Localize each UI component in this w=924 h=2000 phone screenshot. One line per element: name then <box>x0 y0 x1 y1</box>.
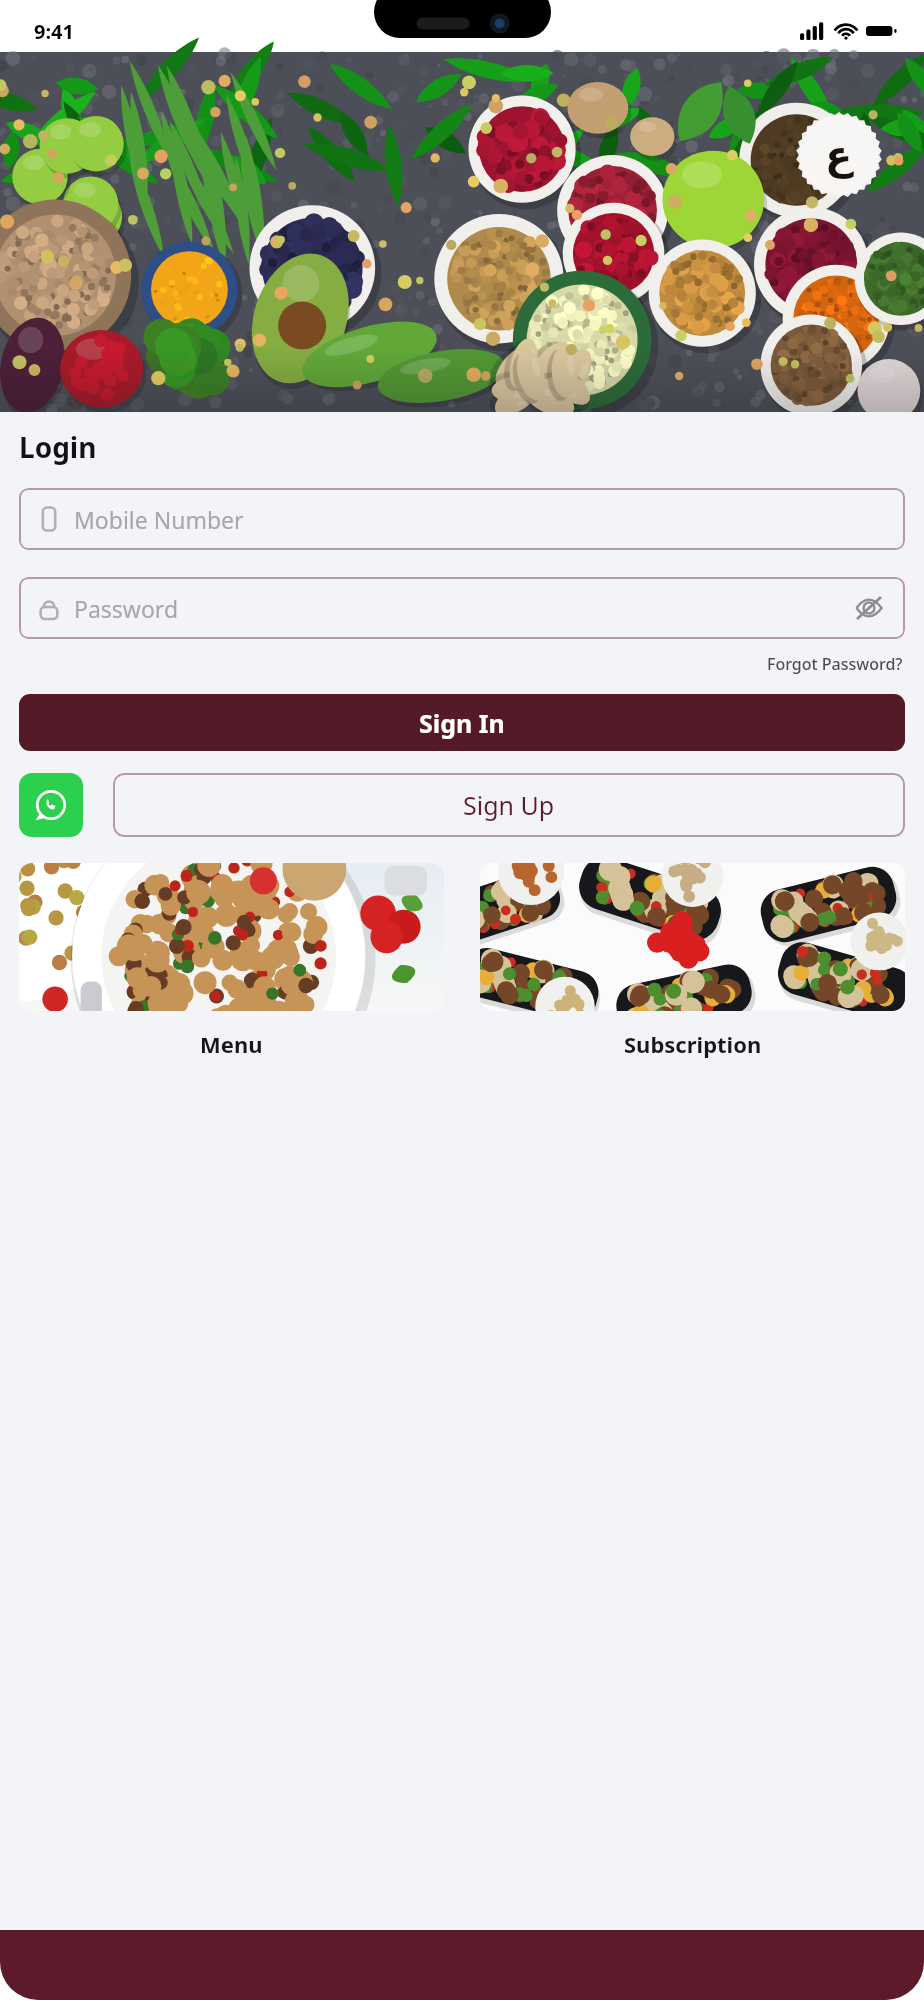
button[interactable]: Menu <box>19 863 444 1059</box>
button[interactable]: Subscription <box>480 863 905 1059</box>
staticText: Subscription <box>624 1029 762 1059</box>
staticText: Login <box>19 428 97 466</box>
button[interactable]: Password <box>19 577 905 639</box>
staticText: Sign In <box>419 706 505 740</box>
button[interactable]: Brand logo <box>796 112 882 198</box>
staticText: Sign Up <box>463 788 555 822</box>
staticText: 9:41 <box>34 18 74 45</box>
button[interactable] <box>0 1930 924 2000</box>
button[interactable]: Forgot Password? <box>765 649 905 679</box>
staticText: Forgot Password? <box>767 653 903 675</box>
staticText: Menu <box>200 1029 263 1059</box>
button[interactable]: Show password <box>852 591 886 625</box>
button[interactable]: Sign Up <box>113 773 905 837</box>
button[interactable]: Sign In <box>19 694 905 751</box>
staticText: Mobile Number <box>74 504 244 535</box>
staticText: ع <box>825 132 853 179</box>
button[interactable]: Mobile Number <box>19 488 905 550</box>
button[interactable]: WhatsApp <box>19 773 83 837</box>
staticText: Password <box>74 593 179 624</box>
